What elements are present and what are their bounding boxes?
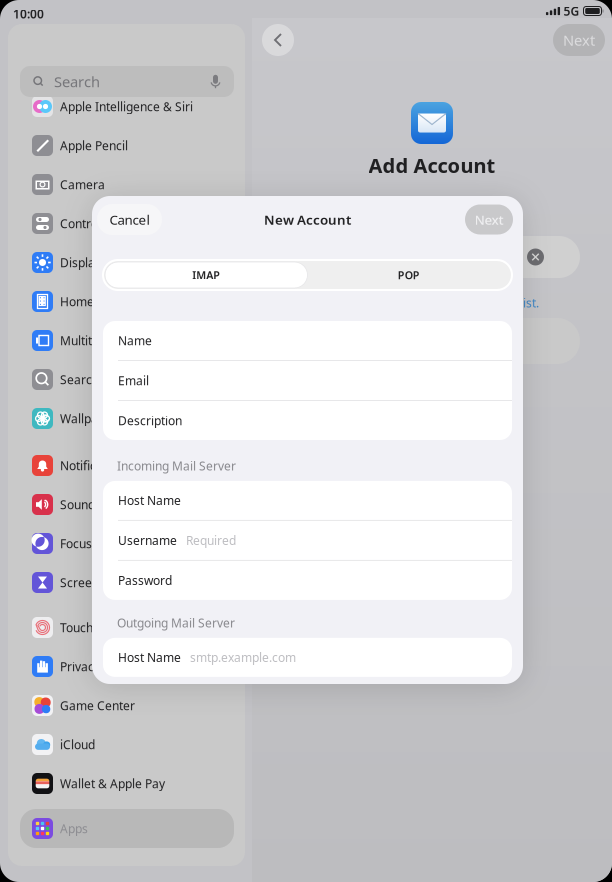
button[interactable]: Focus — [20, 524, 234, 563]
button[interactable]: Next — [465, 204, 513, 234]
staticText: Apple Intelligence & Siri — [60, 98, 193, 114]
staticText: Incoming Mail Server — [117, 458, 236, 474]
staticText: Multitasking & Gestures — [60, 332, 194, 348]
staticText: Description — [118, 412, 182, 428]
staticText: Password — [118, 572, 172, 588]
staticText: Wallpaper — [60, 410, 117, 426]
staticText: Focus — [60, 535, 92, 551]
staticText: Search — [54, 72, 100, 91]
staticText: Sounds — [60, 496, 101, 512]
button[interactable]: Camera — [20, 165, 234, 204]
staticText: Name — [118, 332, 152, 348]
button[interactable]: Back — [262, 24, 294, 56]
staticText: Game Center — [60, 697, 135, 713]
staticText: 5G — [563, 3, 579, 19]
staticText: Host Name — [118, 492, 181, 508]
button[interactable]: Game Center — [20, 686, 234, 725]
button[interactable]: Control Center — [20, 204, 234, 243]
button[interactable]: Notifications — [20, 446, 234, 485]
staticText: smtp.example.com — [190, 649, 296, 665]
staticText: Email — [118, 372, 149, 388]
button[interactable]: Screen Time — [20, 563, 234, 602]
staticText: Home Screen & App Library — [60, 293, 215, 309]
button[interactable]: Cancel — [97, 204, 162, 235]
staticText: iCloud — [60, 736, 95, 752]
staticText: list. — [520, 295, 539, 311]
button[interactable]: Wallpaper — [20, 399, 234, 438]
button[interactable]: Next — [553, 24, 605, 56]
button[interactable]: Multitasking & Gestures — [20, 321, 234, 360]
staticText: Control Center — [60, 215, 142, 231]
staticText: Display & Brightness — [60, 254, 176, 270]
button[interactable]: Apple Intelligence & Siri — [20, 87, 234, 126]
staticText: Cancel — [109, 211, 149, 228]
staticText: Add Account — [368, 152, 495, 179]
staticText: Wallet & Apple Pay — [60, 775, 165, 791]
staticText: Required — [186, 532, 236, 548]
staticText: Touch ID & Passcode — [60, 619, 177, 635]
staticText: Notifications — [60, 457, 130, 473]
staticText: POP — [398, 268, 420, 282]
staticText: IMAP — [192, 268, 220, 282]
staticText: Search — [60, 371, 99, 387]
button[interactable]: Privacy & Security — [20, 647, 234, 686]
staticText: Camera — [60, 176, 105, 192]
button[interactable]: Home Screen & App Library — [20, 282, 234, 321]
button[interactable]: Apps — [20, 809, 234, 848]
staticText: Host Name — [118, 649, 181, 665]
staticText: Screen Time — [60, 574, 130, 590]
staticText: Apps — [60, 820, 88, 836]
staticText: New Account — [264, 211, 351, 228]
button[interactable]: IMAP — [105, 262, 307, 288]
staticText: Apple Pencil — [60, 137, 128, 153]
button[interactable]: Search — [20, 360, 234, 399]
staticText: 10:00 — [13, 6, 44, 22]
button[interactable]: Wallet & Apple Pay — [20, 764, 234, 803]
staticText: Username — [118, 532, 177, 548]
button[interactable]: Touch ID & Passcode — [20, 608, 234, 647]
staticText: Next — [474, 211, 503, 228]
staticText: Privacy & Security — [60, 658, 160, 674]
staticText: Next — [563, 30, 595, 50]
staticText: Outgoing Mail Server — [117, 615, 235, 631]
button[interactable]: Display & Brightness — [20, 243, 234, 282]
button[interactable]: Apple Pencil — [20, 126, 234, 165]
button[interactable]: Sounds — [20, 485, 234, 524]
button[interactable]: iCloud — [20, 725, 234, 764]
button[interactable]: POP — [307, 262, 510, 288]
